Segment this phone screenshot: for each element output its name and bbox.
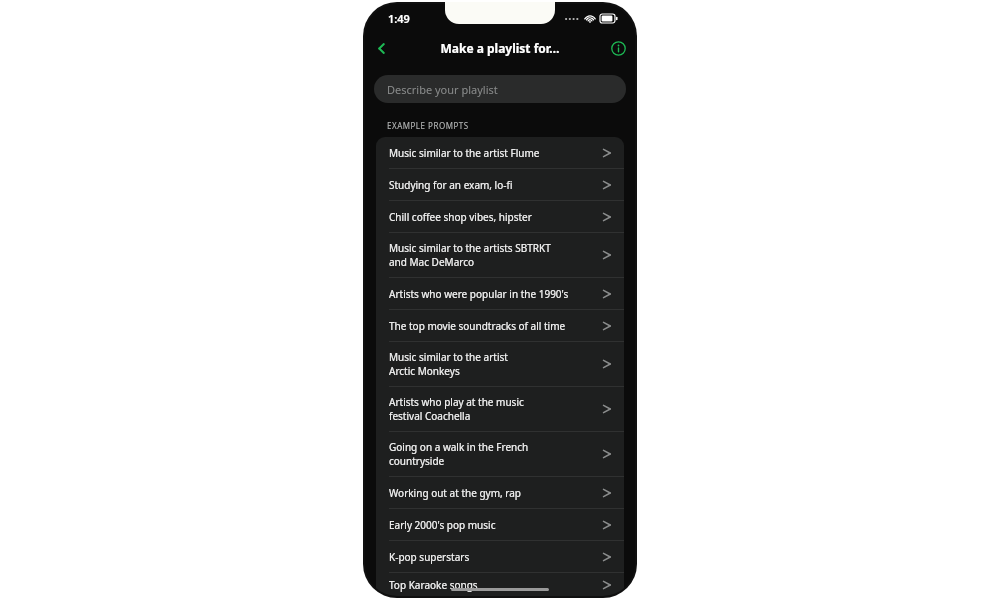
- button[interactable]: Describe your playlist: [374, 75, 626, 103]
- button[interactable]: Going on a walk in the French: [376, 431, 624, 476]
- button[interactable]: Info: [607, 37, 629, 59]
- button[interactable]: The top movie soundtracks of all time: [376, 309, 624, 341]
- staticText: Make a playlist for…: [440, 40, 560, 56]
- staticText: Music similar to the artist: [389, 350, 508, 364]
- button[interactable]: Music similar to the artist Flume: [376, 137, 624, 168]
- staticText: EXAMPLE PROMPTS: [387, 120, 469, 131]
- staticText: countryside: [389, 454, 445, 468]
- button[interactable]: K-pop superstars: [376, 540, 624, 572]
- button[interactable]: Artists who play at the music: [376, 386, 624, 431]
- staticText: Studying for an exam, lo-fi: [389, 178, 513, 192]
- staticText: Artists who were popular in the 1990's: [389, 287, 569, 301]
- button[interactable]: Top Karaoke songs: [376, 572, 624, 596]
- staticText: festival Coachella: [389, 409, 471, 423]
- staticText: and Mac DeMarco: [389, 255, 475, 269]
- staticText: Music similar to the artists SBTRKT: [389, 241, 551, 255]
- staticText: Going on a walk in the French: [389, 440, 529, 454]
- staticText: Chill coffee shop vibes, hipster: [389, 210, 532, 224]
- button[interactable]: Music similar to the artist: [376, 341, 624, 386]
- staticText: Arctic Monkeys: [389, 364, 460, 378]
- staticText: Working out at the gym, rap: [389, 486, 521, 500]
- button[interactable]: Working out at the gym, rap: [376, 476, 624, 508]
- button[interactable]: Artists who were popular in the 1990's: [376, 277, 624, 309]
- staticText: K-pop superstars: [389, 550, 470, 564]
- staticText: 1:49: [388, 11, 410, 26]
- staticText: Describe your playlist: [387, 82, 498, 97]
- button[interactable]: Chill coffee shop vibes, hipster: [376, 200, 624, 232]
- button[interactable]: Back: [368, 35, 394, 61]
- button[interactable]: Music similar to the artists SBTRKT: [376, 232, 624, 277]
- staticText: Early 2000's pop music: [389, 518, 496, 532]
- staticText: Music similar to the artist Flume: [389, 146, 540, 160]
- staticText: Artists who play at the music: [389, 395, 524, 409]
- staticText: The top movie soundtracks of all time: [389, 319, 566, 333]
- button[interactable]: Early 2000's pop music: [376, 508, 624, 540]
- button[interactable]: Studying for an exam, lo-fi: [376, 168, 624, 200]
- staticText: Top Karaoke songs: [389, 578, 478, 592]
